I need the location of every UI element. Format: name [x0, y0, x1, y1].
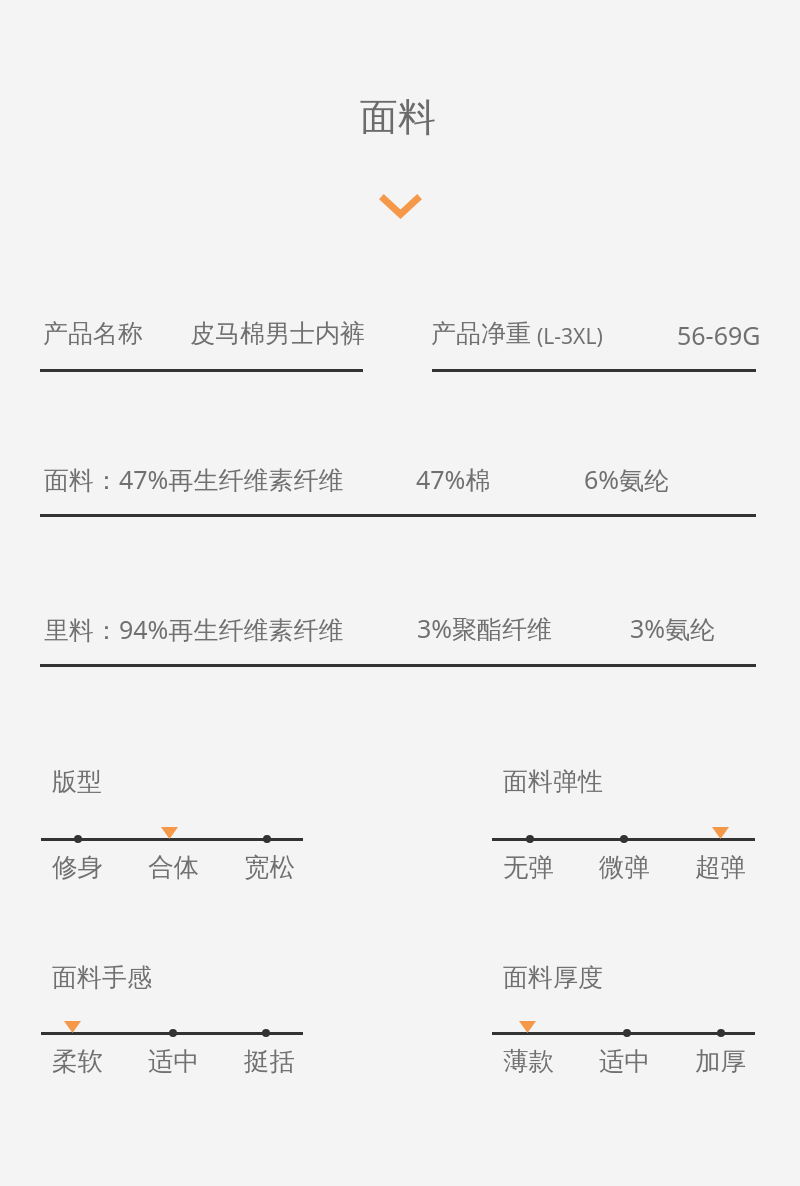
- staticText: 6%氨纶: [584, 462, 670, 496]
- button[interactable]: 适中: [584, 1018, 664, 1078]
- button[interactable]: 微弹: [584, 824, 664, 884]
- staticText: 47%棉: [416, 462, 491, 496]
- staticText: 面料: [360, 93, 436, 141]
- staticText: 适中: [599, 1045, 650, 1077]
- staticText: 皮马棉男士内裤: [190, 318, 365, 349]
- staticText: 3%聚酯纤维: [417, 611, 553, 645]
- staticText: 面料弹性: [503, 766, 603, 797]
- staticText: 加厚: [695, 1045, 746, 1077]
- staticText: (L-3XL): [537, 322, 603, 351]
- staticText: 面料手感: [52, 962, 152, 993]
- staticText: 修身: [52, 851, 103, 883]
- staticText: 薄款: [503, 1045, 554, 1077]
- button[interactable]: 面料：47%再生纤维素纤维: [40, 452, 756, 517]
- staticText: 超弹: [695, 851, 746, 883]
- button[interactable]: 无弹: [488, 824, 568, 884]
- staticText: 3%氨纶: [630, 611, 716, 645]
- button[interactable]: 产品净重: [432, 305, 756, 372]
- button[interactable]: 柔软: [37, 1018, 117, 1078]
- button[interactable]: 挺括: [229, 1018, 309, 1078]
- staticText: 产品名称: [43, 318, 143, 349]
- staticText: 柔软: [52, 1045, 103, 1077]
- staticText: 挺括: [244, 1045, 295, 1077]
- button[interactable]: 加厚: [680, 1018, 760, 1078]
- button[interactable]: 修身: [37, 824, 117, 884]
- staticText: 56-69G: [677, 318, 761, 352]
- button[interactable]: 合体: [133, 824, 213, 884]
- staticText: 适中: [148, 1045, 199, 1077]
- staticText: 无弹: [503, 851, 554, 883]
- staticText: 微弹: [599, 851, 650, 883]
- staticText: 宽松: [244, 851, 295, 883]
- button[interactable]: 适中: [133, 1018, 213, 1078]
- button[interactable]: 宽松: [229, 824, 309, 884]
- button[interactable]: 产品名称: [40, 305, 363, 372]
- staticText: 里料：94%再生纤维素纤维: [44, 612, 344, 646]
- button[interactable]: 薄款: [488, 1018, 568, 1078]
- staticText: 版型: [52, 766, 102, 797]
- staticText: 产品净重: [431, 318, 531, 349]
- staticText: 合体: [148, 851, 199, 883]
- staticText: 面料厚度: [503, 962, 603, 993]
- staticText: 面料：47%再生纤维素纤维: [44, 462, 344, 496]
- button[interactable]: 展开 Expand: [369, 185, 433, 230]
- button[interactable]: 超弹: [680, 824, 760, 884]
- button[interactable]: 里料：94%再生纤维素纤维: [40, 602, 756, 667]
